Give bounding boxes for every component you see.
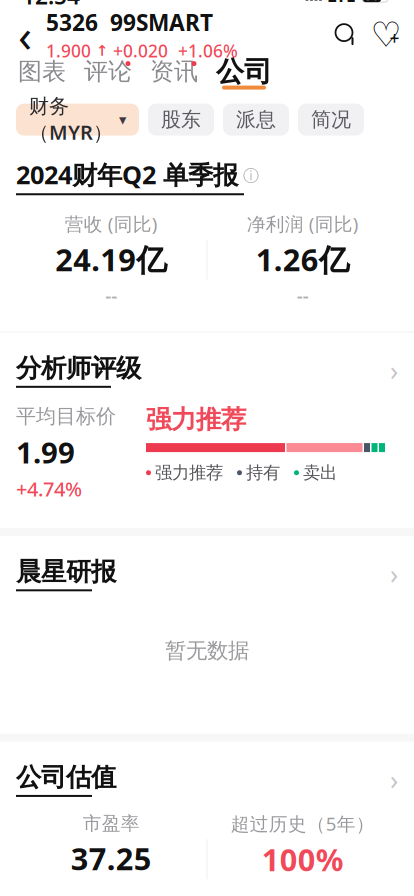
button[interactable]: Search	[326, 15, 366, 55]
staticText: --	[105, 283, 117, 308]
staticText: 1.99	[16, 432, 75, 471]
staticText: ↑	[91, 42, 113, 59]
staticText: 晨星研报	[16, 556, 116, 587]
button[interactable]: 评论	[80, 59, 136, 90]
button[interactable]: Back	[8, 15, 42, 55]
staticText: 公司	[216, 54, 272, 89]
staticText: 图表	[18, 57, 66, 86]
staticText: ♡	[370, 15, 401, 54]
staticText: 市盈率	[83, 812, 140, 835]
staticText: 超过历史（5年）	[231, 811, 375, 836]
staticText: 50	[365, 0, 379, 3]
staticText: 卖出	[303, 462, 337, 483]
staticText: +0.020 +1.06%	[113, 39, 238, 62]
staticText: 派息	[236, 107, 276, 132]
staticText: 1.900	[46, 39, 91, 62]
button[interactable]: 股东	[148, 104, 214, 136]
staticText: 分析师评级	[16, 353, 141, 384]
staticText: 净利润 (同比)	[247, 211, 359, 236]
staticText: LTE	[327, 0, 356, 7]
staticText: ›	[390, 556, 398, 591]
staticText: +	[389, 27, 399, 50]
staticText: --	[297, 283, 309, 308]
staticText: 24.19亿	[55, 239, 167, 280]
staticText: 暂无数据	[165, 637, 249, 664]
staticText: 公司估值	[16, 762, 116, 793]
staticText: ⓘ	[243, 166, 259, 186]
button[interactable]: 晨星研报	[16, 536, 398, 591]
staticText: 37.25	[71, 838, 152, 879]
button[interactable]: 图表	[14, 59, 70, 90]
staticText: 持有	[246, 462, 280, 483]
staticText: 营收 (同比)	[65, 211, 158, 236]
staticText: 平均目标价	[16, 404, 116, 429]
button[interactable]: 公司	[212, 59, 276, 90]
staticText: 资讯	[150, 57, 198, 86]
staticText: +4.74%	[16, 475, 82, 502]
button[interactable]: 简况	[298, 104, 364, 136]
staticText: 评论	[84, 57, 132, 86]
button[interactable]: 分析师评级	[16, 333, 398, 388]
staticText: 股东	[161, 107, 201, 132]
button[interactable]: 财务（MYR）	[16, 104, 139, 136]
button[interactable]: 资讯	[146, 59, 202, 90]
staticText: ›	[390, 353, 398, 388]
staticText: 12:54	[22, 0, 80, 11]
staticText: 简况	[311, 107, 351, 132]
staticText: 财务（MYR）	[29, 94, 113, 145]
staticText: 5326 99SMART	[46, 7, 213, 37]
staticText: ‹	[18, 4, 32, 65]
staticText: 强力推荐	[146, 404, 246, 435]
staticText: 100%	[262, 839, 344, 880]
button[interactable]: Add to watchlist	[366, 15, 406, 55]
staticText: 1.26亿	[256, 239, 350, 280]
staticText: 强力推荐	[155, 462, 223, 483]
staticText: ▾	[119, 111, 126, 128]
button[interactable]: 公司估值	[16, 742, 398, 797]
button[interactable]: 派息	[223, 104, 289, 136]
staticText: 2024财年Q2 单季报	[16, 158, 238, 191]
staticText: ›	[390, 762, 398, 797]
